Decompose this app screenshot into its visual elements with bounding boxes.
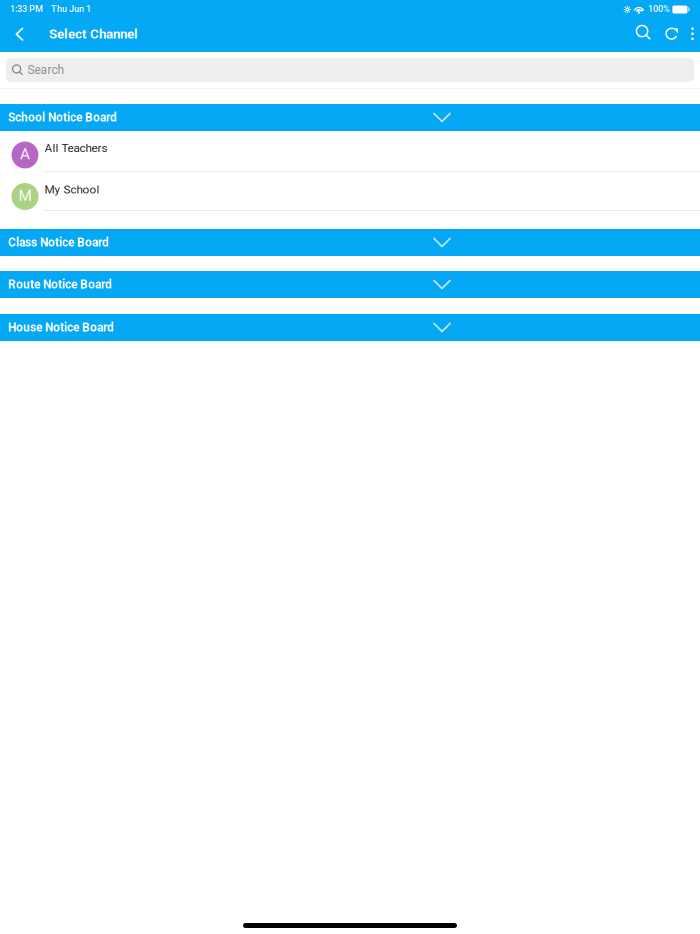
button[interactable]: School Notice Board	[0, 104, 700, 131]
staticText: My School	[44, 182, 99, 196]
staticText: Thu Jun 1	[51, 4, 91, 14]
button[interactable]: Route Notice Board	[0, 271, 700, 298]
staticText: School Notice Board	[8, 110, 117, 124]
button[interactable]: Back	[0, 20, 39, 52]
staticText: Select Channel	[49, 26, 138, 42]
button[interactable]: Refresh	[656, 20, 687, 52]
button[interactable]: A	[0, 131, 700, 172]
staticText: All Teachers	[44, 141, 107, 155]
staticText: 100%	[648, 4, 670, 14]
button[interactable]: Search	[631, 20, 656, 52]
staticText: 1:33 PM	[10, 4, 43, 14]
button[interactable]: Class Notice Board	[0, 229, 700, 256]
staticText: Search	[27, 63, 64, 77]
staticText: M	[18, 186, 31, 204]
button[interactable]: Search	[6, 58, 694, 82]
button[interactable]: M	[0, 172, 700, 211]
button[interactable]: More options	[687, 20, 698, 52]
staticText: House Notice Board	[8, 320, 114, 334]
staticText: Route Notice Board	[8, 277, 112, 291]
button[interactable]: House Notice Board	[0, 314, 700, 341]
staticText: Class Notice Board	[8, 235, 109, 249]
staticText: A	[20, 145, 30, 163]
